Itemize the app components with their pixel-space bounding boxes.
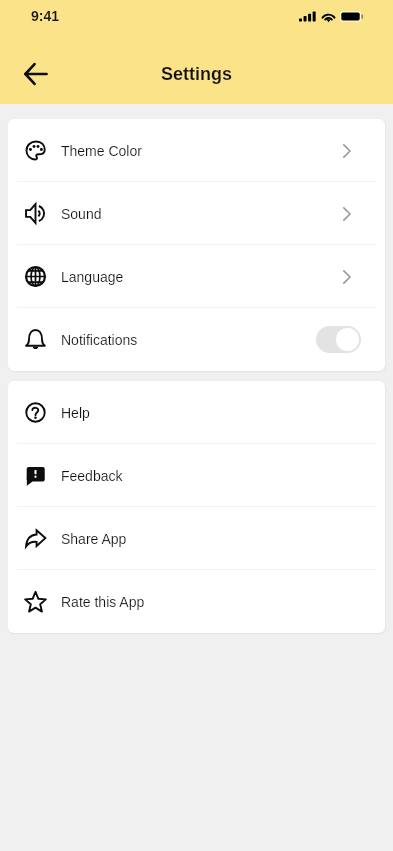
staticText: Feedback (61, 468, 123, 484)
staticText: Rate this App (61, 594, 145, 610)
button[interactable]: Rate this App (8, 570, 385, 633)
staticText: Sound (61, 206, 102, 222)
button[interactable]: Back (12, 50, 60, 98)
button[interactable]: Share App (8, 507, 385, 570)
button[interactable]: Notifications toggle (316, 326, 361, 353)
button[interactable]: Theme Color (8, 119, 385, 182)
button[interactable]: Sound (8, 182, 385, 245)
staticText: Language (61, 269, 124, 285)
staticText: Notifications (61, 332, 138, 348)
button[interactable]: Help (8, 381, 385, 444)
staticText: Help (61, 405, 90, 421)
button[interactable]: Feedback (8, 444, 385, 507)
staticText: Share App (61, 531, 127, 547)
staticText: Settings (161, 64, 233, 84)
button[interactable]: Notifications (8, 308, 385, 371)
staticText: 9:41 (31, 8, 60, 24)
button[interactable]: Language (8, 245, 385, 308)
staticText: Theme Color (61, 143, 142, 159)
